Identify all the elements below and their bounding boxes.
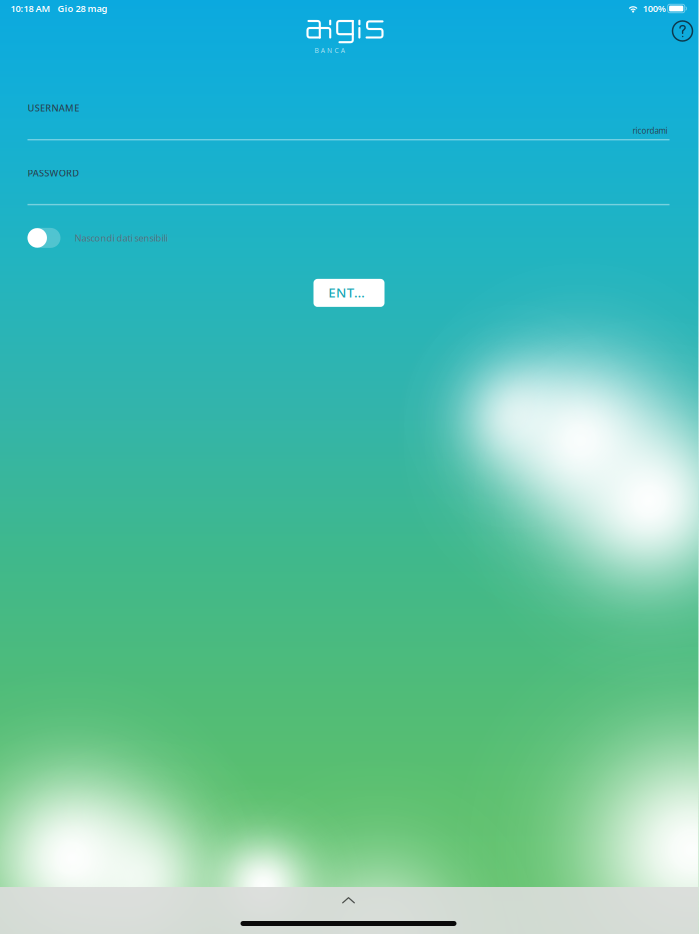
button[interactable]: Nascondi dati sensibili	[27, 226, 60, 250]
button[interactable]: Hide keyboard	[316, 887, 381, 910]
staticText: 100%	[643, 2, 666, 15]
staticText: USERNAME	[27, 102, 79, 114]
button[interactable]: Help	[666, 15, 698, 47]
staticText: BANCA	[314, 46, 345, 55]
staticText: Gio 28 mag	[57, 2, 107, 15]
staticText: ricordami	[632, 125, 667, 136]
button[interactable]: ENTRA	[313, 279, 384, 307]
staticText: Nascondi dati sensibili	[74, 232, 167, 244]
staticText: ENTRA	[328, 283, 370, 301]
staticText: 10:18 AM	[10, 2, 50, 15]
button[interactable]: ricordami	[630, 125, 669, 139]
staticText: PASSWORD	[27, 167, 79, 179]
